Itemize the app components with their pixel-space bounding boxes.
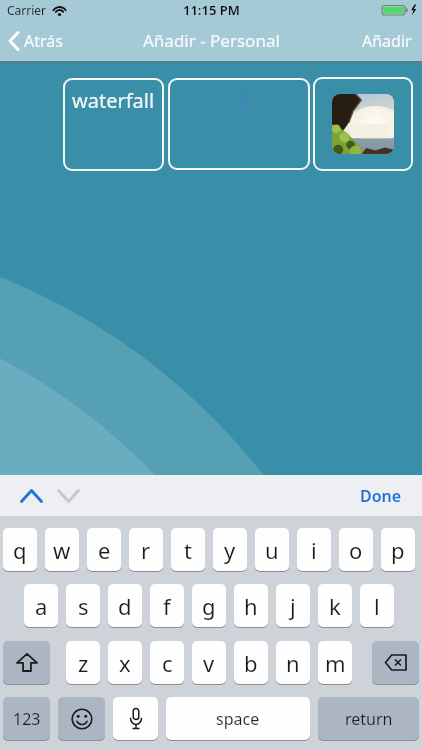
button[interactable]: h bbox=[234, 584, 268, 628]
button[interactable]: v bbox=[192, 641, 226, 685]
button[interactable]: t bbox=[171, 528, 205, 572]
button[interactable]: a bbox=[24, 584, 58, 628]
button[interactable]: j bbox=[276, 584, 310, 628]
staticText: c bbox=[162, 648, 173, 678]
button[interactable] bbox=[3, 641, 50, 685]
staticText: 123 bbox=[13, 708, 41, 730]
staticText: w bbox=[53, 535, 71, 565]
staticText: Carrier bbox=[7, 2, 47, 18]
staticText: i bbox=[311, 535, 317, 565]
button[interactable]: c bbox=[150, 641, 184, 685]
button[interactable]: return bbox=[318, 697, 419, 741]
button[interactable]: r bbox=[129, 528, 163, 572]
staticText: z bbox=[78, 648, 89, 678]
button[interactable] bbox=[113, 697, 158, 741]
staticText: x bbox=[119, 648, 131, 678]
staticText: a bbox=[35, 591, 48, 621]
button[interactable]: Done bbox=[360, 485, 402, 507]
button[interactable]: q bbox=[3, 528, 37, 572]
staticText: t bbox=[184, 535, 192, 565]
staticText: f bbox=[163, 591, 171, 621]
staticText: waterfall bbox=[72, 87, 155, 114]
staticText: Añadir - Personal bbox=[143, 29, 280, 52]
button[interactable]: y bbox=[213, 528, 247, 572]
button[interactable]: s bbox=[66, 584, 100, 628]
staticText: g bbox=[202, 591, 216, 621]
staticText: b bbox=[244, 648, 258, 678]
button[interactable] bbox=[313, 77, 413, 171]
staticText: r bbox=[141, 535, 151, 565]
button[interactable]: l bbox=[360, 584, 394, 628]
staticText: l bbox=[374, 591, 380, 621]
staticText: Atrás bbox=[24, 30, 63, 52]
staticText: p bbox=[391, 535, 405, 565]
button[interactable] bbox=[20, 489, 43, 503]
button[interactable] bbox=[58, 697, 105, 741]
button[interactable] bbox=[57, 489, 80, 503]
staticText: q bbox=[13, 535, 27, 565]
button[interactable]: x bbox=[108, 641, 142, 685]
button[interactable]: Atrás bbox=[8, 30, 63, 52]
button[interactable]: m bbox=[318, 641, 352, 685]
button[interactable]: b bbox=[234, 641, 268, 685]
button[interactable] bbox=[168, 78, 310, 170]
staticText: return bbox=[345, 708, 393, 730]
staticText: k bbox=[329, 591, 341, 621]
staticText: j bbox=[290, 591, 296, 621]
staticText: v bbox=[203, 648, 215, 678]
staticText: 11:15 PM bbox=[183, 1, 240, 19]
button[interactable]: d bbox=[108, 584, 142, 628]
button[interactable]: g bbox=[192, 584, 226, 628]
button[interactable]: k bbox=[318, 584, 352, 628]
button[interactable]: w bbox=[45, 528, 79, 572]
button[interactable]: i bbox=[297, 528, 331, 572]
staticText: m bbox=[325, 648, 346, 678]
staticText: s bbox=[78, 591, 89, 621]
button[interactable]: p bbox=[381, 528, 415, 572]
staticText: o bbox=[349, 535, 363, 565]
button[interactable]: waterfall bbox=[63, 78, 164, 171]
button[interactable]: 123 bbox=[3, 697, 50, 741]
staticText: y bbox=[224, 535, 236, 565]
button[interactable]: u bbox=[255, 528, 289, 572]
staticText: space bbox=[216, 708, 260, 730]
button[interactable]: z bbox=[66, 641, 100, 685]
button[interactable]: Añadir bbox=[362, 30, 412, 52]
staticText: d bbox=[118, 591, 132, 621]
staticText: e bbox=[98, 535, 111, 565]
staticText: h bbox=[244, 591, 258, 621]
button[interactable]: f bbox=[150, 584, 184, 628]
button[interactable]: n bbox=[276, 641, 310, 685]
button[interactable]: o bbox=[339, 528, 373, 572]
staticText: n bbox=[286, 648, 300, 678]
staticText: u bbox=[265, 535, 279, 565]
button[interactable] bbox=[372, 641, 419, 685]
button[interactable]: e bbox=[87, 528, 121, 572]
button[interactable]: space bbox=[166, 697, 310, 741]
